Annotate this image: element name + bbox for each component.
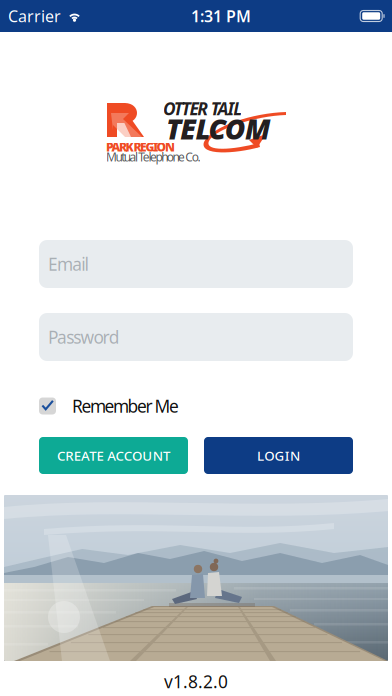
staticText: Carrier [8,5,61,27]
staticText: CREATE ACCOUNT [57,447,170,464]
staticText: 1:31 PM [191,5,251,27]
staticText: TELCOM [166,110,270,147]
staticText: v1.8.2.0 [164,670,228,693]
staticText: Mutual Telephone Co. [106,149,200,165]
staticText: LOGIN [257,447,300,464]
button[interactable]: Remember Me [39,394,353,418]
staticText: Remember Me [72,394,179,417]
button[interactable]: CREATE ACCOUNT [39,437,188,474]
button[interactable]: LOGIN [204,437,353,474]
staticText: OTTER TAIL [163,97,242,120]
staticText: PARK REGION [106,139,175,155]
staticText: Password [48,325,120,348]
staticText: Email [48,252,88,275]
button[interactable]: Email [39,240,353,288]
button[interactable]: Password [39,313,353,361]
